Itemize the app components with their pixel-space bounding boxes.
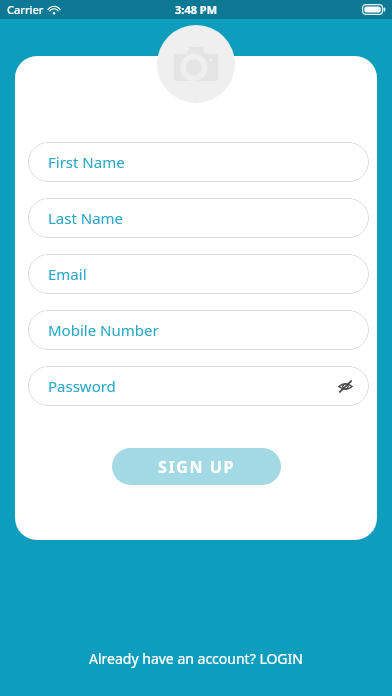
button[interactable]: Password	[28, 366, 369, 406]
staticText: Password	[48, 376, 116, 396]
staticText: Last Name	[48, 208, 124, 228]
staticText: SIGN UP	[158, 456, 236, 478]
staticText: 3:48 PM	[175, 2, 218, 17]
staticText: Mobile Number	[48, 320, 159, 340]
staticText: First Name	[48, 152, 125, 172]
button[interactable]: SIGN UP	[112, 448, 281, 485]
button[interactable]: Change profile photo	[157, 25, 235, 103]
button[interactable]: First Name	[28, 142, 369, 182]
button[interactable]: Already have an account? LOGIN	[0, 645, 392, 671]
staticText: Carrier	[7, 2, 44, 17]
button[interactable]: Email	[28, 254, 369, 294]
staticText: Email	[48, 264, 87, 284]
staticText: Already have an account? LOGIN	[89, 649, 303, 668]
button[interactable]: Last Name	[28, 198, 369, 238]
button[interactable]: Mobile Number	[28, 310, 369, 350]
button[interactable]: Show password	[335, 376, 355, 396]
